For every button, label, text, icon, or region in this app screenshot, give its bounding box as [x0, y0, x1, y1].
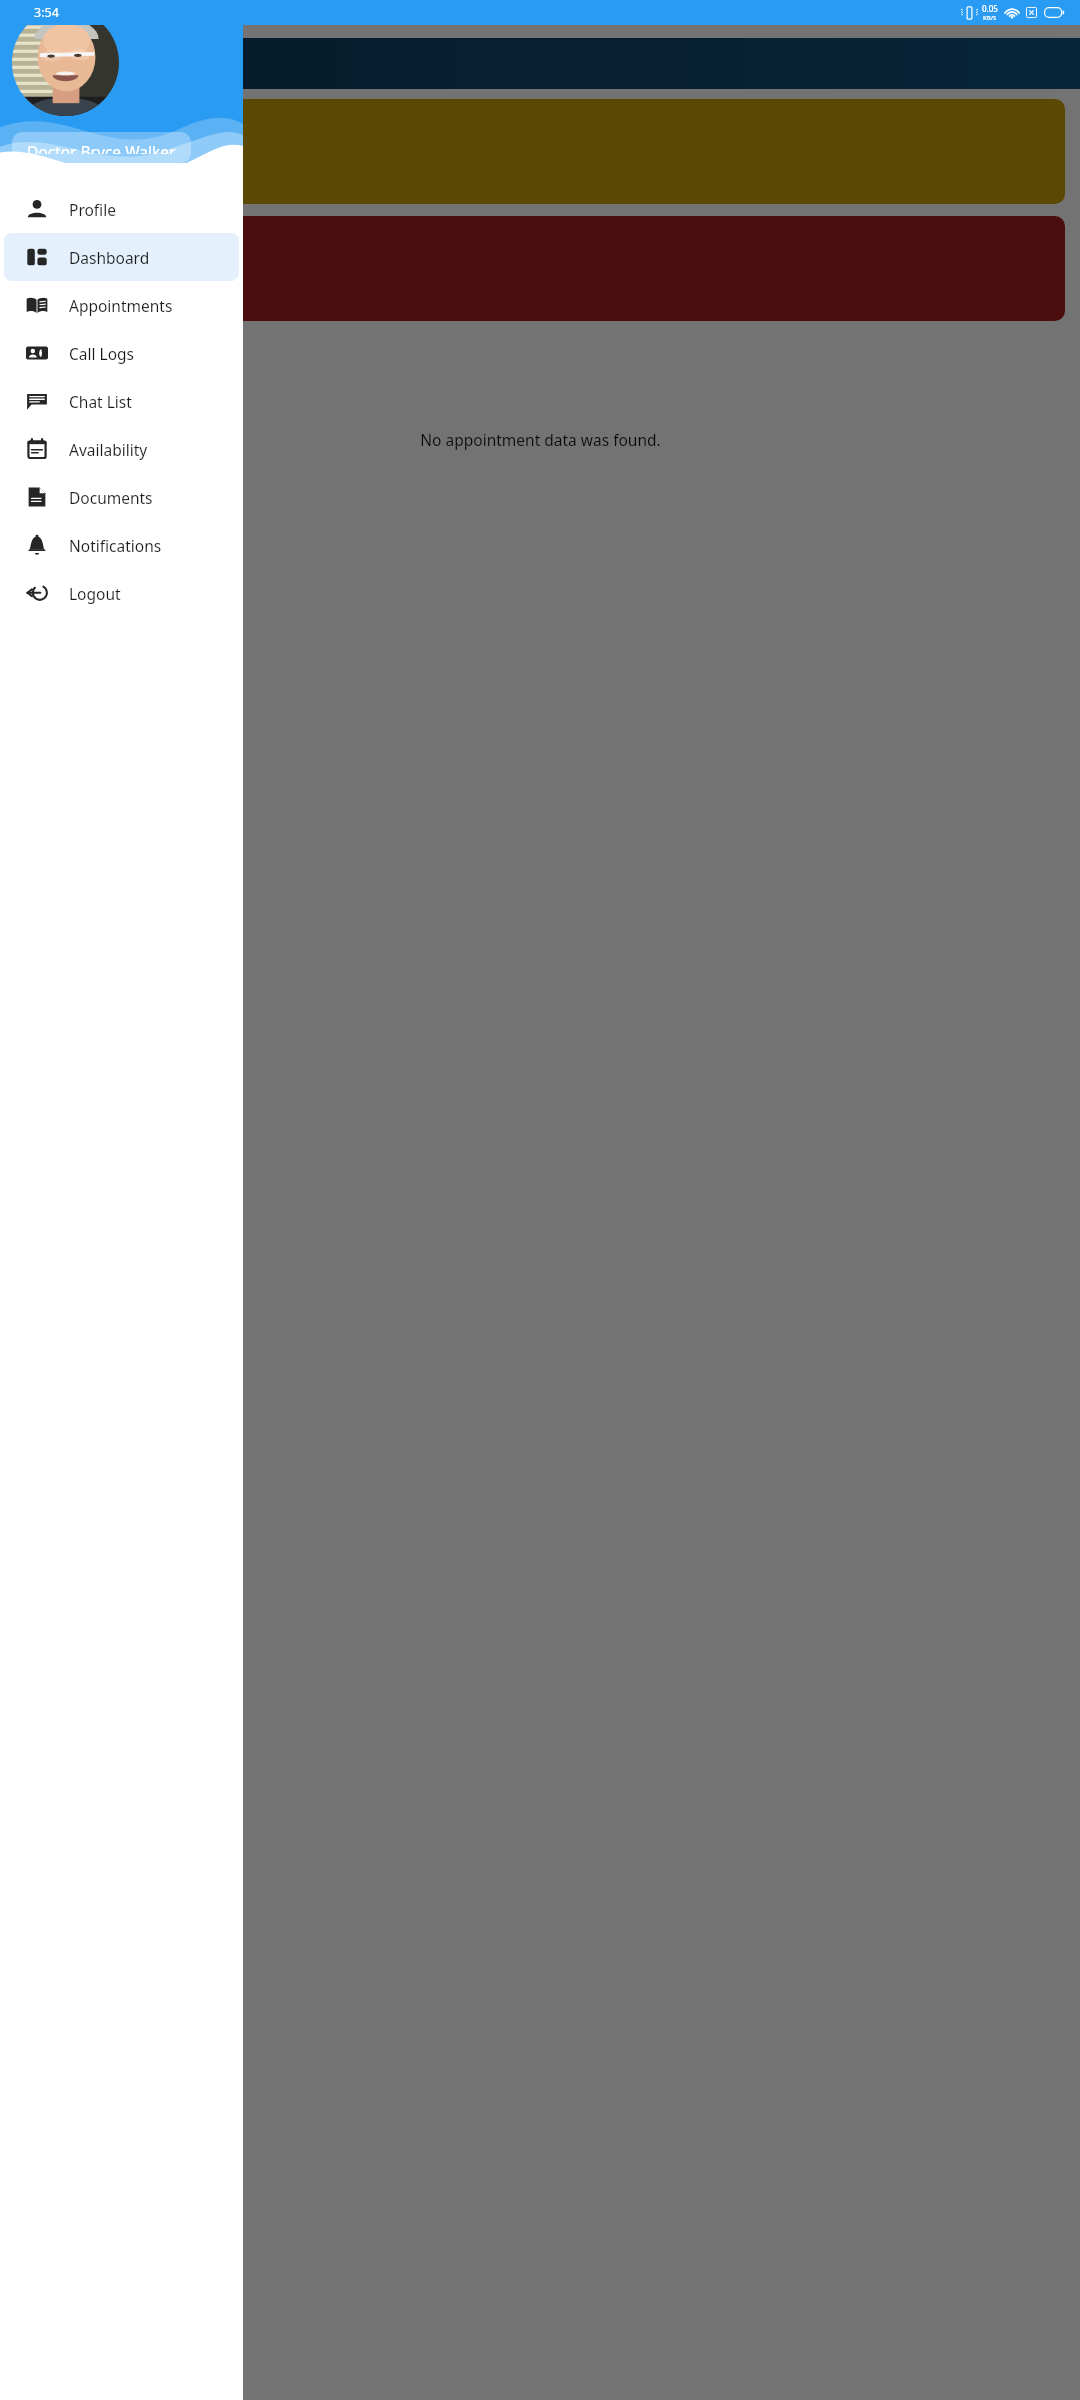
button[interactable]: Chat List: [4, 377, 239, 425]
staticText: Cancelled Appointments: [31, 258, 138, 303]
staticText: Documents: [69, 487, 153, 508]
button[interactable]: Notifications: [4, 521, 239, 569]
button[interactable]: Cancelled Appointments: [15, 216, 1065, 321]
staticText: KB/S: [983, 14, 997, 22]
staticText: Call Logs: [69, 343, 134, 364]
staticText: Dashboard: [69, 247, 150, 268]
staticText: 0.05: [982, 3, 998, 14]
button[interactable]: Doctor Bryce Walker: [12, 132, 191, 163]
button[interactable]: Profile photo: [12, 9, 119, 116]
staticText: Notifications: [69, 535, 162, 556]
staticText: Chat List: [69, 391, 132, 412]
staticText: Appointments: [69, 295, 173, 316]
button[interactable]: Call Logs: [4, 329, 239, 377]
staticText: Doctor Bryce Walker: [27, 141, 176, 154]
button[interactable]: Appointments: [4, 281, 239, 329]
staticText: Availability: [69, 439, 148, 460]
button[interactable]: Availability: [4, 425, 239, 473]
button[interactable]: Documents: [4, 473, 239, 521]
staticText: Scheduled Appointments: [31, 141, 138, 186]
button[interactable]: Logout: [4, 569, 239, 617]
staticText: 3:54: [34, 4, 59, 21]
button[interactable]: Dashboard: [4, 233, 239, 281]
button[interactable]: Scheduled Appointments: [15, 99, 1065, 204]
staticText: Logout: [69, 583, 121, 604]
staticText: Profile: [69, 199, 116, 220]
button[interactable]: Profile: [4, 185, 239, 233]
staticText: No appointment data was found.: [420, 429, 661, 450]
